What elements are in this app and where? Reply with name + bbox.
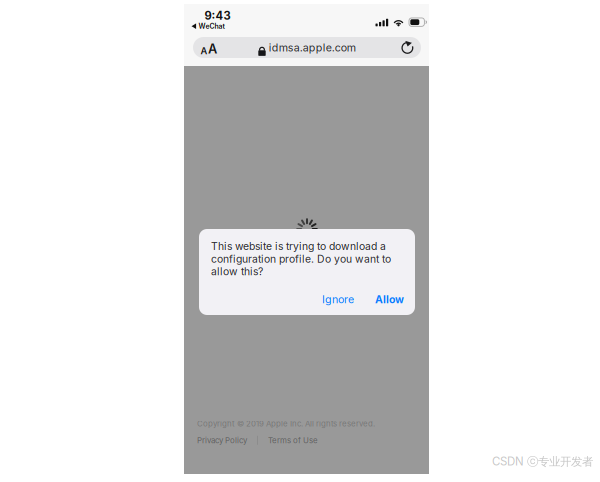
staticText: idmsa.apple.com (269, 41, 356, 54)
staticText: A (208, 41, 217, 56)
button[interactable]: Ignore (322, 293, 354, 306)
staticText: Ignore (322, 293, 354, 306)
button[interactable]: Allow (375, 293, 404, 306)
button[interactable]: A (193, 37, 421, 58)
staticText: This website is trying to download a con… (211, 240, 391, 278)
staticText: A (200, 45, 207, 56)
button[interactable]: Privacy Policy (197, 435, 247, 445)
staticText: Allow (375, 293, 404, 306)
staticText: 9:43 (204, 9, 230, 23)
staticText: WeChat (199, 22, 225, 30)
staticText: CSDN ⓒ专业开发者 (492, 454, 593, 469)
staticText: Terms of Use (268, 435, 318, 445)
button[interactable]: Terms of Use (268, 435, 318, 445)
staticText: Privacy Policy (197, 435, 247, 445)
staticText: Copyright © 2019 Apple Inc. All rights r… (197, 419, 375, 428)
